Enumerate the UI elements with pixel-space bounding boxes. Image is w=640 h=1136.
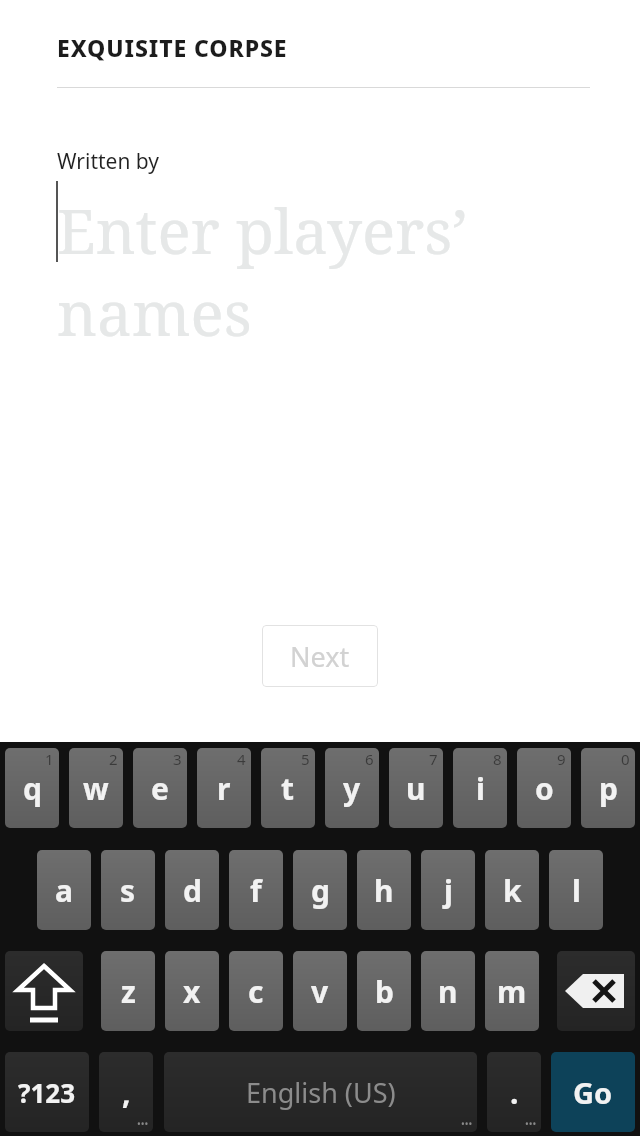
button[interactable]: s bbox=[101, 850, 155, 930]
button[interactable]: a bbox=[37, 850, 91, 930]
button[interactable]: Next bbox=[262, 625, 378, 687]
button[interactable]: o bbox=[517, 748, 571, 828]
staticText: b bbox=[375, 971, 394, 1012]
staticText: k bbox=[503, 870, 522, 911]
button[interactable]: t bbox=[261, 748, 315, 828]
button[interactable]: Enter players’ names bbox=[57, 188, 557, 355]
staticText: u bbox=[406, 768, 426, 809]
staticText: ••• bbox=[525, 1117, 537, 1131]
staticText: ••• bbox=[137, 1117, 149, 1131]
staticText: Next bbox=[290, 638, 350, 675]
staticText: 6 bbox=[365, 749, 374, 769]
staticText: t bbox=[281, 768, 295, 809]
staticText: j bbox=[444, 870, 453, 911]
button[interactable]: g bbox=[293, 850, 347, 930]
staticText: n bbox=[438, 971, 458, 1012]
staticText: c bbox=[248, 971, 264, 1012]
staticText: EXQUISITE CORPSE bbox=[57, 32, 288, 63]
staticText: ••• bbox=[461, 1117, 473, 1131]
button[interactable]: m bbox=[485, 951, 539, 1031]
staticText: g bbox=[311, 870, 330, 911]
staticText: l bbox=[572, 870, 581, 911]
staticText: v bbox=[311, 971, 329, 1012]
button[interactable]: Shift bbox=[5, 951, 83, 1031]
staticText: q bbox=[23, 768, 42, 809]
staticText: x bbox=[183, 971, 201, 1012]
button[interactable]: u bbox=[389, 748, 443, 828]
staticText: m bbox=[497, 971, 527, 1012]
staticText: p bbox=[599, 768, 618, 809]
staticText: s bbox=[120, 870, 136, 911]
button[interactable]: k bbox=[485, 850, 539, 930]
staticText: Written by bbox=[57, 147, 160, 176]
button[interactable]: English (US) bbox=[164, 1052, 477, 1132]
staticText: r bbox=[217, 768, 231, 809]
staticText: 8 bbox=[493, 749, 502, 769]
staticText: 0 bbox=[621, 749, 630, 769]
staticText: 3 bbox=[173, 749, 182, 769]
staticText: y bbox=[343, 768, 361, 809]
button[interactable]: Go bbox=[551, 1052, 635, 1132]
button[interactable]: w bbox=[69, 748, 123, 828]
staticText: 1 bbox=[45, 749, 54, 769]
button[interactable]: h bbox=[357, 850, 411, 930]
button[interactable]: r bbox=[197, 748, 251, 828]
button[interactable]: Backspace bbox=[557, 951, 635, 1031]
button[interactable]: y bbox=[325, 748, 379, 828]
button[interactable]: . bbox=[487, 1052, 541, 1132]
staticText: a bbox=[55, 870, 73, 911]
staticText: . bbox=[510, 1072, 519, 1113]
button[interactable]: j bbox=[421, 850, 475, 930]
button[interactable]: d bbox=[165, 850, 219, 930]
staticText: w bbox=[83, 768, 109, 809]
staticText: h bbox=[374, 870, 394, 911]
button[interactable]: l bbox=[549, 850, 603, 930]
staticText: English (US) bbox=[246, 1074, 396, 1111]
staticText: 5 bbox=[301, 749, 310, 769]
staticText: Go bbox=[573, 1073, 613, 1112]
button[interactable]: z bbox=[101, 951, 155, 1031]
button[interactable]: e bbox=[133, 748, 187, 828]
button[interactable]: b bbox=[357, 951, 411, 1031]
button[interactable]: , bbox=[99, 1052, 153, 1132]
staticText: f bbox=[250, 870, 262, 911]
button[interactable]: x bbox=[165, 951, 219, 1031]
staticText: 4 bbox=[237, 749, 246, 769]
staticText: i bbox=[476, 768, 485, 809]
staticText: ?123 bbox=[18, 1075, 76, 1110]
staticText: z bbox=[121, 971, 136, 1012]
button[interactable]: p bbox=[581, 748, 635, 828]
staticText: 9 bbox=[557, 749, 566, 769]
staticText: e bbox=[151, 768, 169, 809]
button[interactable]: f bbox=[229, 850, 283, 930]
staticText: 7 bbox=[429, 749, 438, 769]
staticText: d bbox=[183, 870, 202, 911]
button[interactable]: n bbox=[421, 951, 475, 1031]
staticText: o bbox=[535, 768, 554, 809]
staticText: , bbox=[122, 1072, 131, 1113]
button[interactable]: i bbox=[453, 748, 507, 828]
button[interactable]: v bbox=[293, 951, 347, 1031]
button[interactable]: c bbox=[229, 951, 283, 1031]
staticText: 2 bbox=[109, 749, 118, 769]
button[interactable]: ?123 bbox=[5, 1052, 89, 1132]
button[interactable]: q bbox=[5, 748, 59, 828]
